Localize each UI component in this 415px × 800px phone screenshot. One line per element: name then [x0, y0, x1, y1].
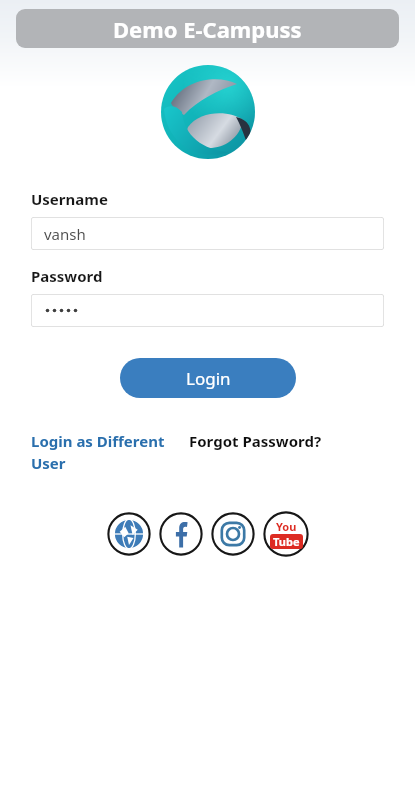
button[interactable]	[31, 294, 384, 327]
staticText: Login	[186, 367, 231, 390]
button[interactable]: Instagram	[211, 512, 255, 556]
staticText: Tube	[273, 534, 300, 549]
button[interactable]: Facebook	[159, 512, 203, 556]
button[interactable]: Login	[120, 358, 296, 398]
staticText: Demo E-Campuss	[113, 14, 302, 44]
button[interactable]: Forgot Password?	[189, 431, 322, 451]
button[interactable]: vansh	[31, 217, 384, 250]
staticText: You	[276, 519, 297, 534]
button[interactable]: Website	[107, 512, 151, 556]
button[interactable]: Demo E-Campuss	[16, 9, 399, 48]
button[interactable]: Login as Different User	[31, 431, 179, 474]
button[interactable]: YouTube	[263, 511, 309, 557]
staticText: Username	[31, 189, 108, 209]
staticText: Forgot Password?	[189, 431, 322, 451]
staticText: Login as Different User	[31, 431, 179, 474]
staticText: vansh	[44, 224, 86, 244]
staticText: Password	[31, 266, 103, 286]
